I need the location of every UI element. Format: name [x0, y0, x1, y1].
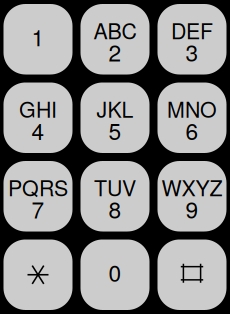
staticText: 0 — [108, 256, 121, 288]
button[interactable]: 2 ABC — [80, 4, 149, 74]
staticText: 3 — [185, 35, 198, 68]
button[interactable]: Star — [3, 239, 72, 310]
staticText: 8 — [108, 192, 121, 225]
button[interactable]: 4 GHI — [3, 82, 72, 153]
button[interactable]: 5 JKL — [80, 82, 149, 153]
staticText: 4 — [31, 114, 44, 146]
button[interactable]: Pound — [157, 239, 226, 310]
staticText: ABC — [93, 15, 136, 45]
button[interactable]: 8 TUV — [80, 161, 149, 231]
staticText: JKL — [96, 93, 133, 124]
staticText: PQRS — [8, 172, 68, 202]
button[interactable]: 9 WXYZ — [157, 161, 226, 231]
staticText: MNO — [167, 93, 217, 124]
button[interactable]: 0 — [80, 239, 149, 310]
staticText: GHI — [19, 93, 57, 124]
button[interactable]: 3 DEF — [157, 4, 226, 74]
staticText: DEF — [171, 15, 213, 45]
staticText: WXYZ — [161, 172, 222, 202]
button[interactable]: 1 — [3, 4, 72, 74]
button[interactable]: 6 MNO — [157, 82, 226, 153]
staticText: 2 — [108, 35, 121, 68]
button[interactable]: 7 PQRS — [3, 161, 72, 231]
staticText: 5 — [108, 114, 121, 146]
staticText: 9 — [185, 192, 198, 225]
staticText: 1 — [31, 20, 44, 53]
staticText: 6 — [185, 114, 198, 146]
staticText: 7 — [31, 192, 44, 225]
staticText: TUV — [94, 172, 136, 202]
